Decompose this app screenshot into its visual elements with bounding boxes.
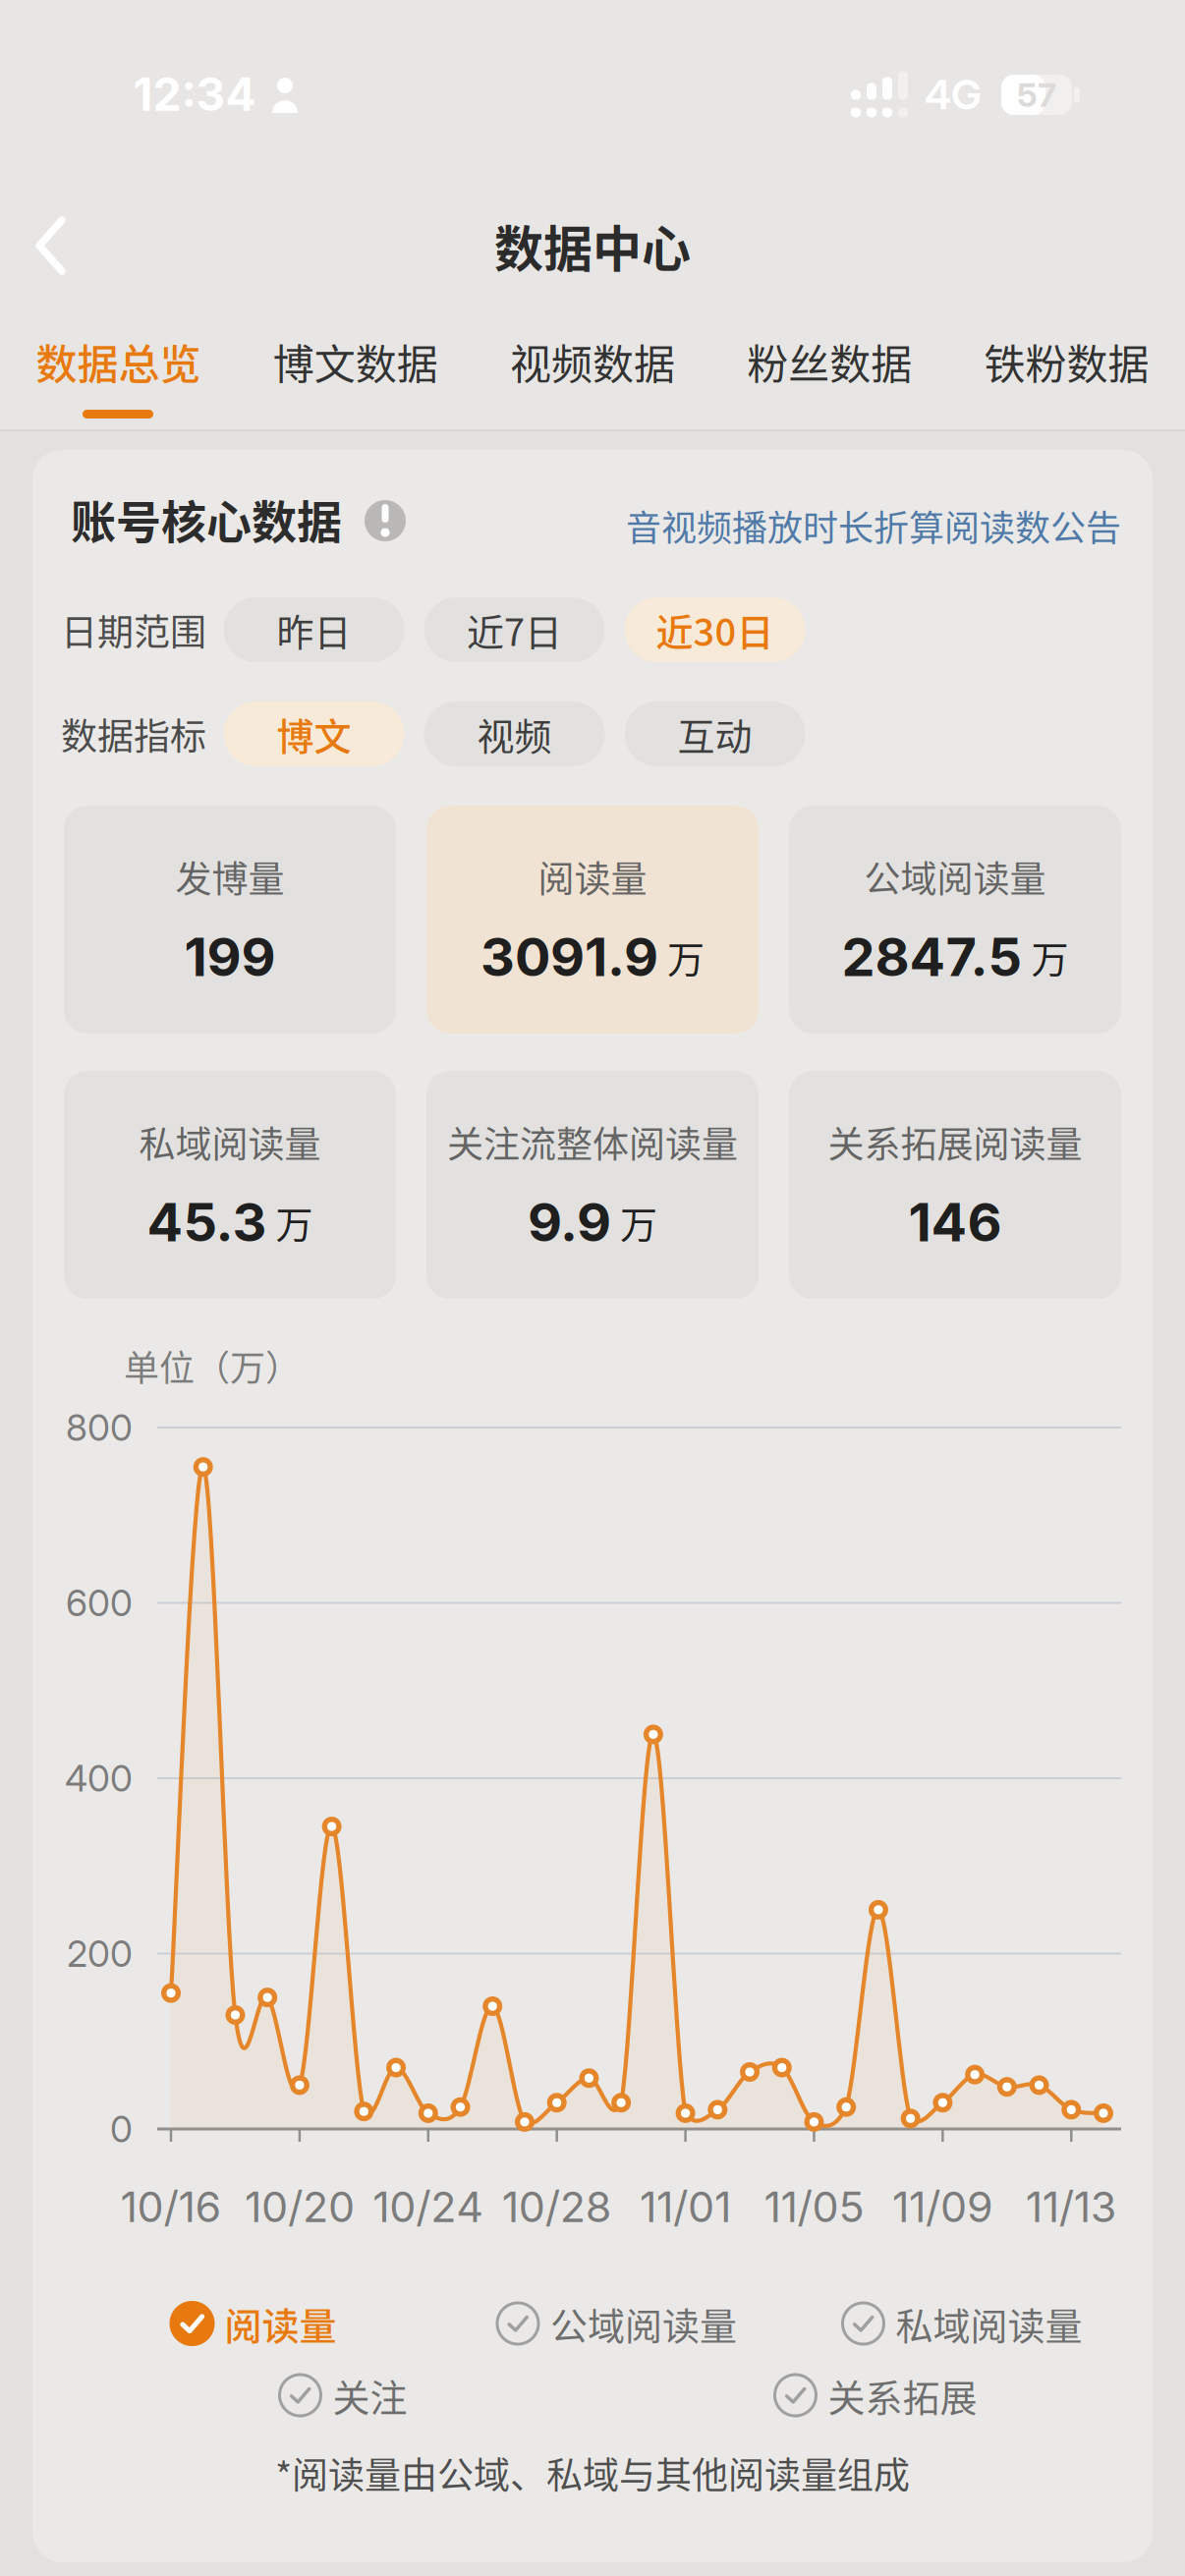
staticText: 4G xyxy=(925,69,982,119)
staticText: 关注流整体阅读量 xyxy=(447,1116,738,1168)
staticText: 45.3 xyxy=(147,1190,267,1254)
button[interactable]: 关系拓展阅读量 xyxy=(789,1071,1121,1299)
staticText: 万 xyxy=(1031,930,1069,984)
staticText: 铁粉数据 xyxy=(984,332,1149,391)
staticText: 私域阅读量 xyxy=(139,1116,321,1168)
button[interactable]: 说明 xyxy=(365,500,406,541)
staticText: 阅读量 xyxy=(538,850,647,903)
staticText: 199 xyxy=(184,925,276,989)
staticText: 万 xyxy=(620,1195,657,1249)
staticText: 3091.9 xyxy=(480,925,658,989)
staticText: 10/16 xyxy=(120,2181,222,2232)
button[interactable]: 近7日 xyxy=(424,597,605,662)
staticText: 数据指标 xyxy=(61,708,206,760)
button[interactable]: 近30日 xyxy=(625,597,805,662)
button[interactable]: 博文 xyxy=(224,701,404,766)
staticText: 账号核心数据 xyxy=(71,486,342,551)
staticText: 发博量 xyxy=(175,850,284,903)
staticText: 10/24 xyxy=(373,2181,484,2232)
button[interactable]: 数据总览 xyxy=(36,332,201,391)
staticText: 12:34 xyxy=(133,67,256,122)
button[interactable]: 昨日 xyxy=(224,597,404,662)
staticText: 0 xyxy=(110,2107,133,2151)
button[interactable]: 互动 xyxy=(625,701,805,766)
staticText: 互动 xyxy=(678,707,752,761)
staticText: 200 xyxy=(67,1932,133,1976)
staticText: 阅读量 xyxy=(225,2296,337,2351)
staticText: 57 xyxy=(1017,75,1056,115)
button[interactable]: 音视频播放时长折算阅读数公告 xyxy=(626,500,1121,551)
staticText: 近30日 xyxy=(656,603,774,657)
staticText: 10/20 xyxy=(245,2181,355,2232)
staticText: 视频数据 xyxy=(510,332,675,391)
button[interactable]: 关注流整体阅读量 xyxy=(426,1071,759,1299)
button[interactable]: 博文数据 xyxy=(273,332,438,391)
button[interactable]: 公域阅读量 xyxy=(789,806,1121,1034)
staticText: 视频 xyxy=(477,707,552,761)
button[interactable]: 私域阅读量 xyxy=(64,1071,396,1299)
staticText: 数据中心 xyxy=(494,210,691,281)
staticText: 10/28 xyxy=(502,2181,612,2232)
staticText: 400 xyxy=(65,1756,133,1800)
button[interactable]: 公域阅读量 xyxy=(495,2296,737,2351)
staticText: 公域阅读量 xyxy=(864,850,1046,903)
staticText: 近7日 xyxy=(467,603,562,657)
staticText: 私域阅读量 xyxy=(896,2296,1082,2351)
staticText: 11/01 xyxy=(640,2181,731,2232)
staticText: 关注 xyxy=(333,2368,407,2422)
button[interactable]: 粉丝数据 xyxy=(747,332,912,391)
staticText: 11/05 xyxy=(764,2181,864,2232)
staticText: 11/13 xyxy=(1026,2181,1117,2232)
staticText: 万 xyxy=(276,1195,313,1249)
button[interactable]: 私域阅读量 xyxy=(841,2296,1082,2351)
button[interactable]: 发博量 xyxy=(64,806,396,1034)
staticText: 2847.5 xyxy=(842,925,1022,989)
button[interactable]: 关注 xyxy=(278,2368,407,2422)
staticText: 日期范围 xyxy=(61,603,206,656)
staticText: *阅读量由公域、私域与其他阅读量组成 xyxy=(275,2447,910,2499)
staticText: 9.9 xyxy=(528,1190,611,1254)
staticText: 公域阅读量 xyxy=(550,2296,737,2351)
staticText: 万 xyxy=(667,930,705,984)
staticText: 昨日 xyxy=(277,603,351,657)
button[interactable]: 阅读量 xyxy=(169,2296,337,2351)
button[interactable]: 返回 xyxy=(34,216,68,275)
button[interactable]: 铁粉数据 xyxy=(984,332,1149,391)
staticText: 146 xyxy=(908,1190,1002,1254)
button[interactable]: 视频数据 xyxy=(510,332,675,391)
staticText: 粉丝数据 xyxy=(747,332,912,391)
button[interactable]: 视频 xyxy=(424,701,605,766)
staticText: 关系拓展阅读量 xyxy=(828,1116,1082,1168)
button[interactable]: 阅读量 xyxy=(426,806,759,1034)
staticText: 博文数据 xyxy=(273,332,438,391)
staticText: 博文 xyxy=(277,707,351,761)
button[interactable]: 关系拓展 xyxy=(773,2368,977,2422)
staticText: 单位（万） xyxy=(124,1340,301,1391)
staticText: 音视频播放时长折算阅读数公告 xyxy=(626,500,1121,551)
staticText: 800 xyxy=(66,1406,133,1450)
staticText: 关系拓展 xyxy=(828,2368,977,2422)
staticText: 数据总览 xyxy=(36,332,201,391)
staticText: 11/09 xyxy=(892,2181,993,2232)
staticText: 600 xyxy=(66,1581,133,1625)
